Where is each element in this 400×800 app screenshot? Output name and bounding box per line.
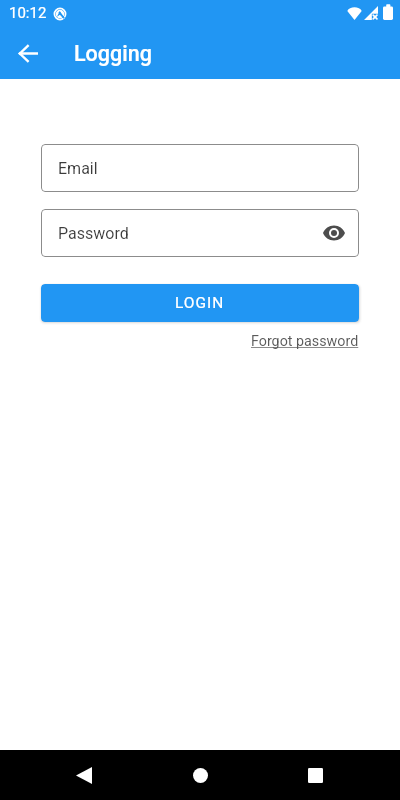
button[interactable]: LOGIN	[41, 284, 359, 322]
button[interactable]: Show password	[318, 217, 350, 249]
button[interactable]: Back	[60, 751, 108, 799]
staticText: Email	[58, 159, 98, 178]
button[interactable]: Back	[11, 36, 45, 70]
staticText: Password	[58, 224, 129, 243]
staticText: Forgot password	[251, 333, 359, 350]
button[interactable]: Forgot password	[251, 333, 359, 350]
button[interactable]: Home	[176, 751, 224, 799]
button[interactable]: Password	[41, 209, 359, 257]
staticText: 10:12	[9, 4, 47, 22]
staticText: Logging	[74, 41, 152, 66]
button[interactable]: Email	[41, 144, 359, 192]
staticText: LOGIN	[175, 294, 225, 312]
button[interactable]: Recent apps	[291, 751, 339, 799]
